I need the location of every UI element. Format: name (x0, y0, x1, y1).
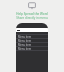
button[interactable]: Menu item (16, 39, 48, 42)
staticText: Menu item (18, 39, 32, 42)
staticText: Menu item (18, 35, 32, 38)
button[interactable]: Menu item (16, 47, 48, 50)
button[interactable]: Feedback (28, 2, 36, 10)
staticText: Menu item (18, 47, 32, 50)
button[interactable]: Menu item (16, 43, 48, 46)
staticText: Share directly in menu (0, 16, 64, 20)
button[interactable]: Menu item (16, 35, 48, 38)
staticText: Help Spread the Word (0, 12, 64, 16)
staticText: Menu item (18, 43, 32, 46)
